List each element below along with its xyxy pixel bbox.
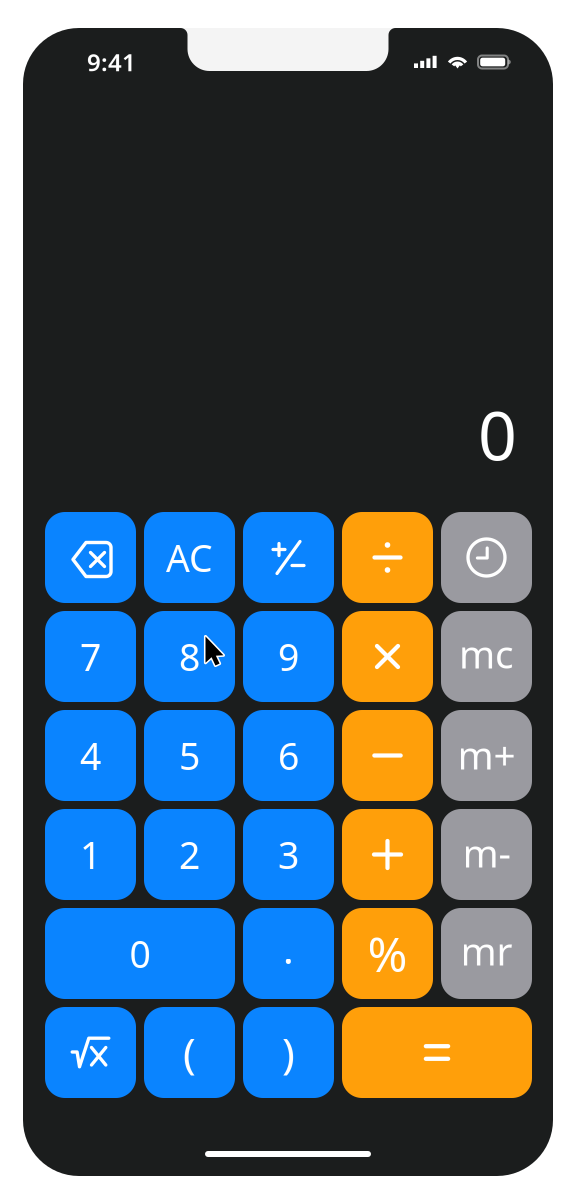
button[interactable]: Multiply bbox=[342, 611, 433, 702]
staticText: 3 bbox=[278, 830, 299, 879]
staticText: AC bbox=[166, 533, 213, 582]
button[interactable]: History bbox=[441, 512, 532, 603]
button[interactable]: Delete bbox=[45, 512, 136, 603]
staticText: ) bbox=[282, 1024, 295, 1081]
button[interactable]: Subtract bbox=[342, 710, 433, 801]
staticText: 6 bbox=[278, 731, 299, 780]
button[interactable]: Divide bbox=[342, 512, 433, 603]
staticText: 5 bbox=[179, 731, 200, 780]
staticText: mr bbox=[460, 925, 512, 976]
staticText: ( bbox=[183, 1024, 196, 1081]
button[interactable]: Square root bbox=[45, 1007, 136, 1098]
staticText: mc bbox=[459, 628, 514, 679]
button[interactable]: ( bbox=[144, 1007, 235, 1098]
button[interactable]: 4 bbox=[45, 710, 136, 801]
staticText: 9:41 bbox=[87, 46, 136, 78]
staticText: 8 bbox=[179, 632, 200, 681]
button[interactable]: 8 bbox=[144, 611, 235, 702]
button[interactable]: m- bbox=[441, 809, 532, 900]
button[interactable]: ) bbox=[243, 1007, 334, 1098]
staticText: 0 bbox=[129, 929, 150, 978]
button[interactable]: Add bbox=[342, 809, 433, 900]
button[interactable]: Equals bbox=[342, 1007, 532, 1098]
button[interactable]: 6 bbox=[243, 710, 334, 801]
button[interactable]: 3 bbox=[243, 809, 334, 900]
button[interactable]: 2 bbox=[144, 809, 235, 900]
staticText: 9 bbox=[278, 632, 299, 681]
staticText: % bbox=[367, 922, 407, 985]
staticText: 1 bbox=[80, 830, 101, 879]
staticText: m+ bbox=[457, 729, 515, 780]
button[interactable]: 9 bbox=[243, 611, 334, 702]
staticText: 0 bbox=[478, 389, 517, 479]
button[interactable]: Toggle sign bbox=[243, 512, 334, 603]
button[interactable]: . bbox=[243, 908, 334, 999]
staticText: 7 bbox=[80, 632, 101, 681]
button[interactable]: 0 bbox=[45, 908, 235, 999]
staticText: 2 bbox=[179, 830, 200, 879]
staticText: 4 bbox=[80, 731, 101, 780]
button[interactable]: 7 bbox=[45, 611, 136, 702]
button[interactable]: 5 bbox=[144, 710, 235, 801]
button[interactable]: AC bbox=[144, 512, 235, 603]
button[interactable]: 1 bbox=[45, 809, 136, 900]
staticText: m- bbox=[462, 827, 510, 878]
button[interactable]: mr bbox=[441, 908, 532, 999]
staticText: . bbox=[283, 922, 294, 975]
button[interactable]: % bbox=[342, 908, 433, 999]
button[interactable]: mc bbox=[441, 611, 532, 702]
button[interactable]: m+ bbox=[441, 710, 532, 801]
